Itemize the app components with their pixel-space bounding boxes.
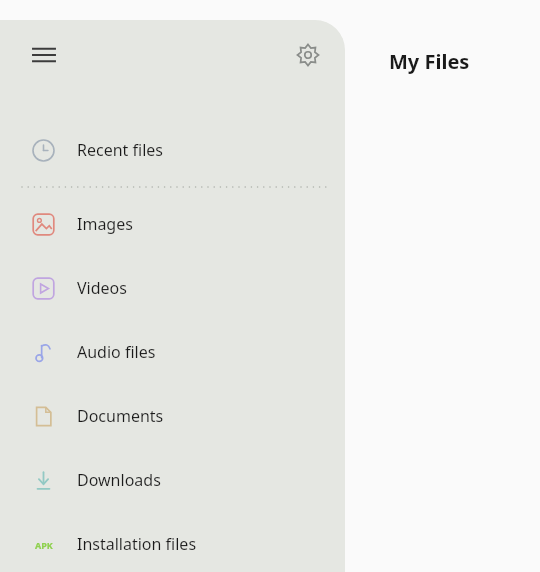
button[interactable]: Open navigation menu bbox=[22, 33, 66, 77]
staticText: Downloads bbox=[77, 469, 161, 491]
button[interactable]: Downloads bbox=[0, 448, 345, 512]
staticText: Installation files bbox=[77, 533, 197, 555]
button[interactable]: APK bbox=[0, 512, 345, 572]
staticText: My Files bbox=[389, 48, 470, 75]
staticText: Audio files bbox=[77, 341, 156, 363]
staticText: APK bbox=[35, 539, 53, 551]
staticText: Documents bbox=[77, 405, 164, 427]
button[interactable]: Videos bbox=[0, 256, 345, 320]
button[interactable]: Recent files bbox=[0, 118, 345, 182]
staticText: Recent files bbox=[77, 139, 163, 161]
staticText: Images bbox=[77, 213, 133, 235]
button[interactable]: Documents bbox=[0, 384, 345, 448]
button[interactable]: Audio files bbox=[0, 320, 345, 384]
button[interactable]: Settings bbox=[286, 33, 330, 77]
button[interactable]: Images bbox=[0, 192, 345, 256]
staticText: Videos bbox=[77, 277, 127, 299]
